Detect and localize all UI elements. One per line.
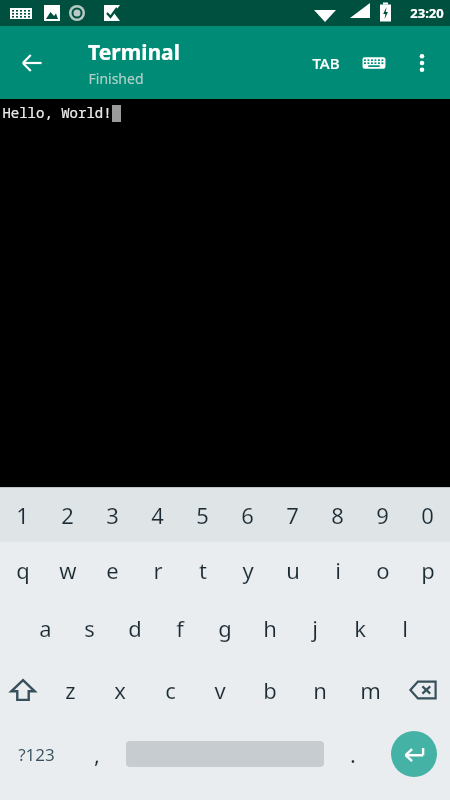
button[interactable]: l: [382, 597, 427, 659]
button[interactable]: .: [328, 721, 378, 787]
button[interactable]: Back: [8, 39, 56, 87]
staticText: 7: [286, 500, 299, 530]
button[interactable]: h: [247, 597, 292, 659]
staticText: c: [165, 675, 176, 705]
staticText: f: [176, 613, 184, 643]
staticText: x: [114, 675, 126, 705]
button[interactable]: 1: [0, 488, 45, 542]
button[interactable]: t: [180, 542, 225, 597]
staticText: n: [313, 675, 327, 705]
staticText: a: [39, 613, 52, 643]
button[interactable]: Hello, World!: [0, 99, 450, 487]
button[interactable]: 3: [90, 488, 135, 542]
staticText: 0: [421, 500, 434, 530]
button[interactable]: 4: [135, 488, 180, 542]
staticText: m: [360, 675, 381, 705]
button[interactable]: m: [345, 659, 395, 721]
staticText: l: [402, 613, 408, 643]
staticText: u: [286, 555, 300, 585]
staticText: t: [199, 555, 207, 585]
button[interactable]: o: [360, 542, 405, 597]
button[interactable]: d: [112, 597, 157, 659]
staticText: TAB: [312, 53, 340, 73]
staticText: z: [65, 675, 76, 705]
button[interactable]: 8: [315, 488, 360, 542]
button[interactable]: More options: [398, 39, 446, 87]
staticText: r: [153, 555, 163, 585]
staticText: b: [263, 675, 277, 705]
button[interactable]: 5: [180, 488, 225, 542]
staticText: .: [350, 739, 356, 769]
staticText: 9: [376, 500, 389, 530]
staticText: i: [335, 555, 341, 585]
staticText: 1: [16, 500, 29, 530]
staticText: Finished: [88, 69, 144, 88]
button[interactable]: ,: [72, 721, 122, 787]
button[interactable]: k: [337, 597, 382, 659]
button[interactable]: Toggle keyboard: [350, 39, 398, 87]
button[interactable]: r: [135, 542, 180, 597]
button[interactable]: f: [157, 597, 202, 659]
button[interactable]: i: [315, 542, 360, 597]
staticText: y: [242, 555, 254, 585]
staticText: 2: [61, 500, 74, 530]
button[interactable]: TAB: [302, 39, 350, 87]
staticText: Terminal: [88, 38, 180, 67]
staticText: q: [16, 555, 30, 585]
button[interactable]: Space: [122, 721, 328, 787]
staticText: Hello, World!: [2, 103, 112, 122]
button[interactable]: 9: [360, 488, 405, 542]
button[interactable]: x: [95, 659, 145, 721]
button[interactable]: Shift: [0, 659, 45, 721]
button[interactable]: 7: [270, 488, 315, 542]
button[interactable]: u: [270, 542, 315, 597]
staticText: d: [128, 613, 142, 643]
staticText: 3: [106, 500, 119, 530]
button[interactable]: ?123: [0, 721, 72, 787]
button[interactable]: a: [23, 597, 67, 659]
button[interactable]: z: [45, 659, 95, 721]
staticText: g: [218, 613, 232, 643]
button[interactable]: v: [195, 659, 245, 721]
staticText: h: [263, 613, 277, 643]
staticText: 23:20: [410, 4, 444, 22]
staticText: 4: [151, 500, 164, 530]
button[interactable]: b: [245, 659, 295, 721]
button[interactable]: Backspace: [395, 659, 450, 721]
button[interactable]: 6: [225, 488, 270, 542]
button[interactable]: y: [225, 542, 270, 597]
button[interactable]: g: [202, 597, 247, 659]
button[interactable]: n: [295, 659, 345, 721]
staticText: p: [421, 555, 435, 585]
button[interactable]: j: [292, 597, 337, 659]
button[interactable]: c: [145, 659, 195, 721]
button[interactable]: Enter: [378, 721, 450, 787]
staticText: w: [59, 555, 77, 585]
button[interactable]: w: [45, 542, 90, 597]
staticText: v: [214, 675, 226, 705]
staticText: ,: [94, 739, 100, 769]
staticText: k: [354, 613, 366, 643]
staticText: 8: [331, 500, 344, 530]
button[interactable]: s: [67, 597, 112, 659]
button[interactable]: 0: [405, 488, 450, 542]
staticText: e: [106, 555, 119, 585]
staticText: 5: [196, 500, 209, 530]
staticText: 6: [241, 500, 254, 530]
button[interactable]: q: [0, 542, 45, 597]
staticText: ?123: [18, 743, 55, 766]
button[interactable]: p: [405, 542, 450, 597]
staticText: j: [312, 613, 318, 643]
button[interactable]: e: [90, 542, 135, 597]
staticText: o: [376, 555, 390, 585]
staticText: s: [84, 613, 95, 643]
button[interactable]: 2: [45, 488, 90, 542]
